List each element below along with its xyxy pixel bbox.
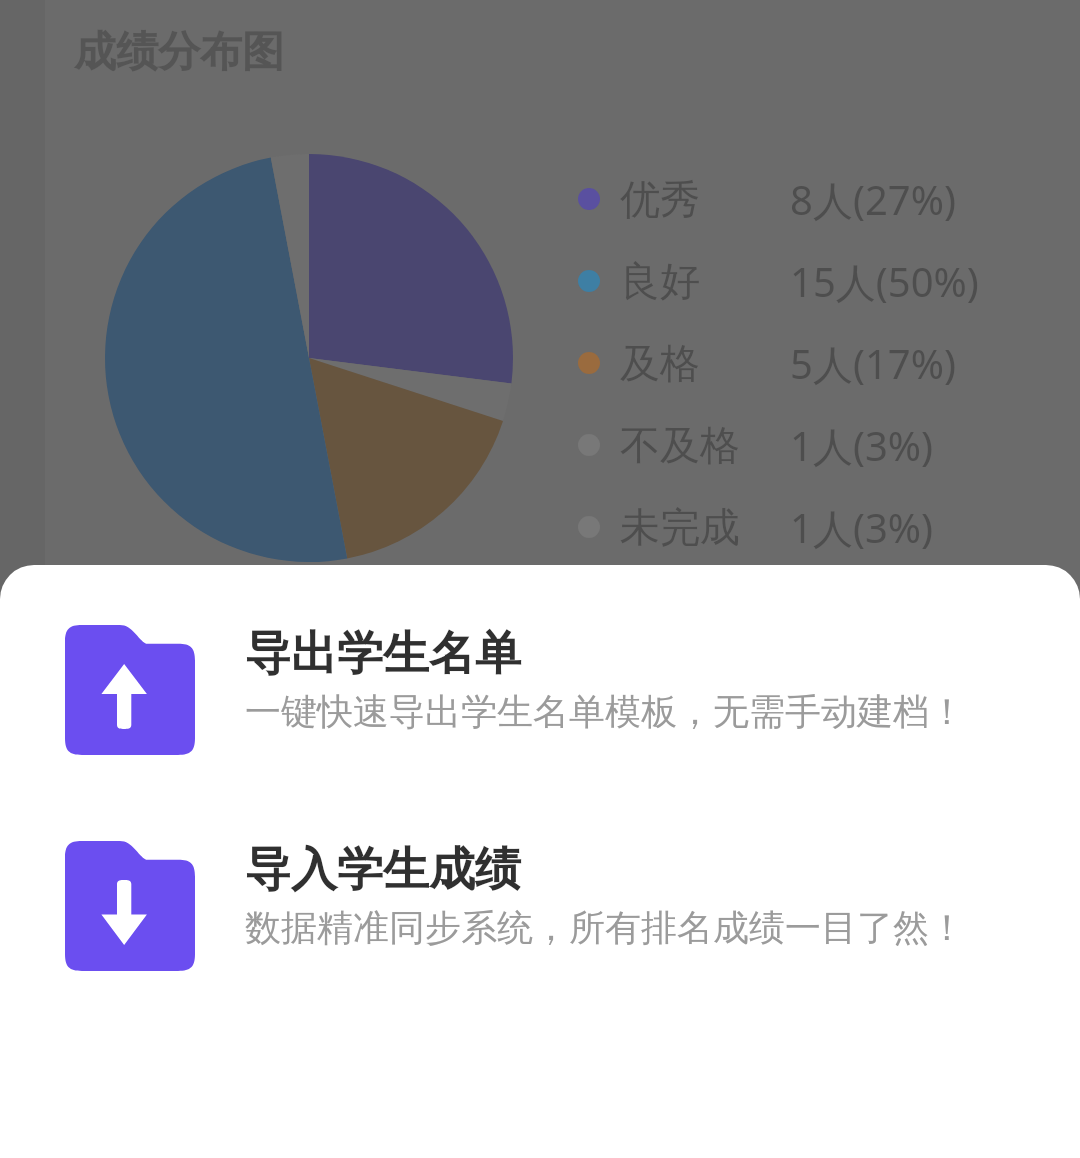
staticText: 数据精准同步系统，所有排名成绩一目了然！ — [245, 905, 965, 950]
other: Export student list — [65, 625, 195, 755]
staticText: 不及格 — [620, 420, 740, 470]
staticText: 一键快速导出学生名单模板，无需手动建档！ — [245, 689, 965, 734]
staticText: 良好 — [620, 256, 700, 306]
button[interactable]: Export student list — [0, 625, 1080, 755]
staticText: 5人(17%) — [790, 336, 956, 391]
button[interactable]: Import student scores — [0, 841, 1080, 971]
staticText: 成绩分布图 — [74, 26, 284, 79]
staticText: 导入学生成绩 — [245, 841, 521, 899]
staticText: 15人(50%) — [790, 254, 979, 309]
staticText: 导出学生名单 — [245, 625, 521, 683]
other: Import student scores — [65, 841, 195, 971]
staticText: 未完成 — [620, 502, 740, 552]
staticText: 及格 — [620, 338, 700, 388]
staticText: 优秀 — [620, 174, 700, 224]
staticText: 1人(3%) — [790, 418, 933, 473]
staticText: 8人(27%) — [790, 172, 956, 227]
staticText: 1人(3%) — [790, 500, 933, 555]
